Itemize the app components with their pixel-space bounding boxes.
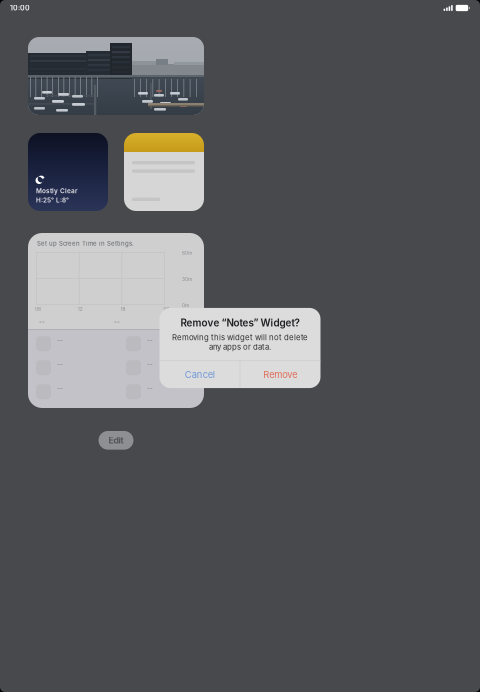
staticText: 0m [182,302,189,308]
staticText: Mostly Clear [36,187,78,195]
staticText: -- [57,385,63,392]
staticText: Removing this widget will not delete [172,333,308,342]
staticText: 10:00 [10,4,30,12]
staticText: 00 [163,306,169,312]
button[interactable]: Remove [240,361,320,388]
staticText: 30m [182,276,192,282]
staticText: Edit [108,435,123,446]
staticText: any apps or data. [209,342,271,352]
staticText: -- [147,385,153,392]
staticText: -- [114,318,120,325]
staticText: -- [57,361,63,368]
staticText: Cancel [185,369,215,380]
staticText: Remove “Notes” Widget? [180,317,299,329]
button[interactable]: Edit [98,431,133,450]
staticText: H:25° L:8° [36,196,69,204]
staticText: -- [147,337,153,344]
staticText: 18 [121,306,126,312]
staticText: 06 [35,306,41,312]
staticText: -- [57,337,63,344]
staticText: Set up Screen Time in Settings. [37,240,134,247]
staticText: 60m [182,250,192,256]
staticText: -- [39,318,45,325]
staticText: -- [147,361,153,368]
button[interactable]: Cancel [160,361,240,388]
staticText: Remove [263,369,297,380]
staticText: 12 [78,306,83,312]
